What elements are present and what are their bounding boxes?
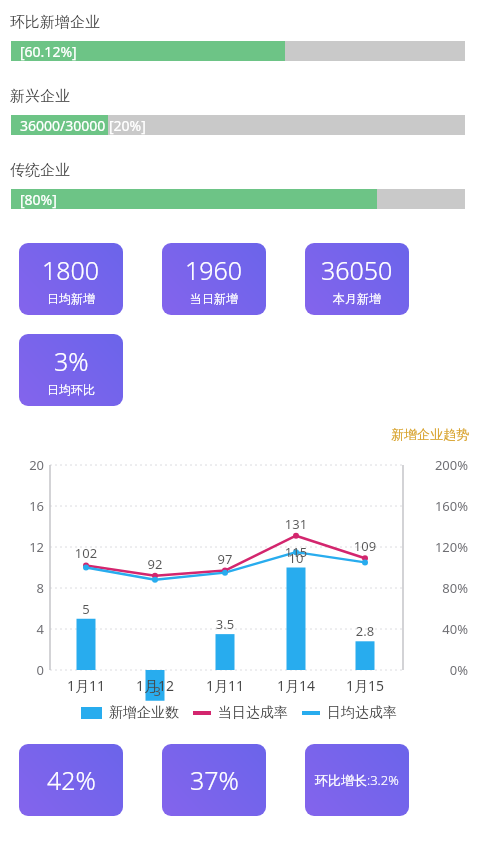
- staticText: 20: [8, 456, 44, 474]
- staticText: 42%: [47, 763, 96, 797]
- staticText: 5: [66, 600, 106, 618]
- button[interactable]: 42%: [19, 744, 123, 816]
- staticText: 1月12: [125, 676, 185, 695]
- staticText: 1月15: [335, 676, 395, 695]
- staticText: 36000/30000 [20%]: [20, 116, 146, 135]
- staticText: 80%: [410, 579, 468, 597]
- staticText: 日均新增: [47, 291, 95, 306]
- staticText: 8: [8, 579, 44, 597]
- staticText: 新兴企业: [10, 87, 70, 106]
- button[interactable]: 36050: [305, 243, 409, 315]
- staticText: 109: [345, 537, 385, 555]
- staticText: 0: [8, 661, 44, 679]
- staticText: 92: [135, 555, 175, 573]
- staticText: [60.12%]: [20, 42, 77, 61]
- staticText: 当日达成率: [218, 704, 288, 722]
- staticText: 当日新增: [190, 291, 238, 306]
- staticText: 环比新增企业: [10, 13, 100, 32]
- staticText: 97: [205, 550, 245, 568]
- staticText: 36050: [321, 253, 393, 287]
- button[interactable]: [60.12%]: [11, 41, 465, 61]
- staticText: 3.5: [205, 615, 245, 633]
- button[interactable]: 新增企业趋势: [391, 426, 477, 442]
- staticText: 本月新增: [333, 291, 381, 306]
- button[interactable]: [80%]: [11, 189, 465, 209]
- staticText: 1960: [185, 253, 243, 287]
- staticText: 1月11: [195, 676, 255, 695]
- button[interactable]: 1960: [162, 243, 266, 315]
- button[interactable]: 环比增长:3.2%: [305, 744, 409, 816]
- staticText: 131: [276, 515, 316, 533]
- staticText: 120%: [410, 538, 468, 556]
- staticText: 102: [66, 544, 106, 562]
- staticText: 160%: [410, 497, 468, 515]
- staticText: 37%: [190, 763, 239, 797]
- button[interactable]: 37%: [162, 744, 266, 816]
- button[interactable]: 36000/30000 [20%]: [11, 115, 465, 135]
- staticText: 4: [8, 620, 44, 638]
- staticText: 1月14: [266, 676, 326, 695]
- staticText: 0%: [410, 661, 468, 679]
- staticText: 1月11: [56, 676, 116, 695]
- button[interactable]: 1800: [19, 243, 123, 315]
- staticText: 10: [276, 549, 316, 567]
- staticText: 200%: [410, 456, 468, 474]
- staticText: 日均环比: [47, 382, 95, 397]
- staticText: 115: [276, 543, 316, 561]
- staticText: -3: [135, 682, 175, 700]
- staticText: 2.8: [345, 622, 385, 640]
- staticText: 1800: [42, 253, 100, 287]
- staticText: 新增企业数: [109, 704, 179, 722]
- staticText: 40%: [410, 620, 468, 638]
- staticText: 12: [8, 538, 44, 556]
- staticText: [80%]: [20, 190, 57, 209]
- staticText: 日均达成率: [327, 704, 397, 722]
- staticText: 3%: [54, 344, 89, 378]
- staticText: 传统企业: [10, 161, 70, 180]
- button[interactable]: 3%: [19, 334, 123, 406]
- staticText: 16: [8, 497, 44, 515]
- staticText: 环比增长:3.2%: [315, 771, 399, 789]
